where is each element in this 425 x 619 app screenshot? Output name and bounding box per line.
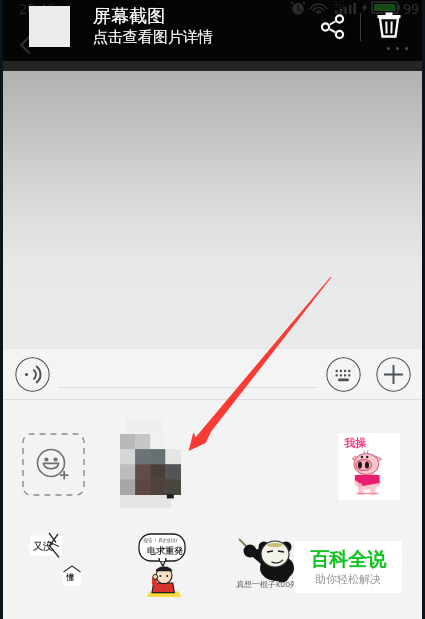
staticText: 屏幕截图: [93, 5, 165, 28]
button[interactable]: More: [376, 357, 411, 392]
staticText: 电求重発: [147, 545, 183, 556]
staticText: 20:46: [19, 0, 55, 14]
button[interactable]: Add sticker: [22, 433, 85, 496]
staticText: 真想一棍子kuo死你: [236, 578, 302, 589]
staticText: 又没: [33, 540, 53, 553]
button[interactable]: Delete: [373, 10, 405, 42]
staticText: 我操: [344, 436, 366, 450]
staticText: 报告！真的好好: [143, 537, 178, 543]
button[interactable]: Pig sticker: [339, 433, 400, 500]
button[interactable]: Sticker: [137, 533, 195, 597]
staticText: 懂: [66, 572, 74, 582]
button[interactable]: Voice message: [15, 357, 50, 392]
button[interactable]: Share: [313, 11, 343, 41]
staticText: 百科全说: [310, 548, 386, 572]
button[interactable]: Back: [11, 30, 41, 60]
button[interactable]: Sticker: [120, 418, 184, 500]
staticText: 3G: [333, 0, 345, 10]
button[interactable]: Sticker: [26, 533, 86, 589]
button[interactable]: Sticker: [236, 533, 302, 589]
staticText: 点击查看图片详情: [93, 28, 213, 47]
button[interactable]: Watermark: [294, 541, 402, 593]
button[interactable]: Keyboard: [326, 357, 361, 392]
staticText: 助你轻松解决: [315, 572, 381, 586]
staticText: 99: [403, 0, 420, 14]
